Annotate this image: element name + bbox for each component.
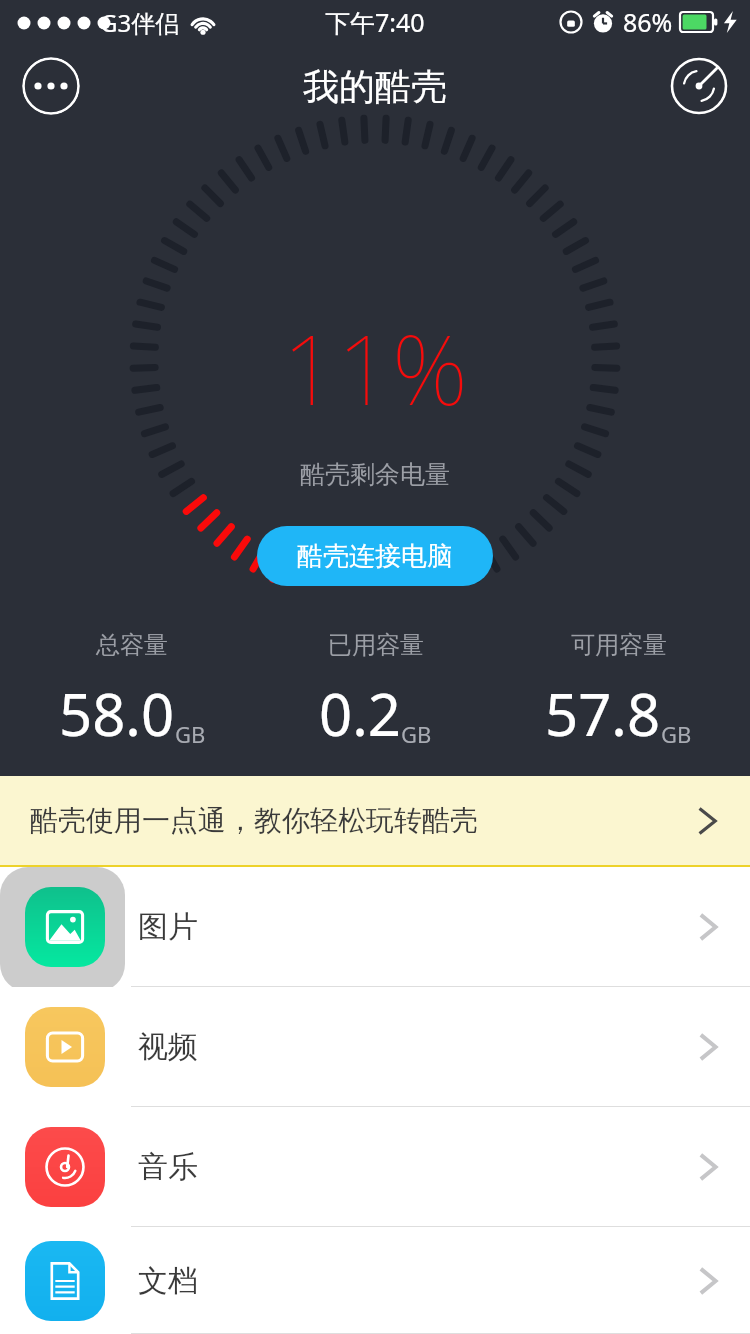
staticText: 0.2 (319, 674, 401, 753)
button[interactable]: 文档 (0, 1227, 750, 1334)
button[interactable]: More options (22, 57, 80, 115)
staticText: 酷壳剩余电量 (300, 459, 450, 490)
staticText: GB (401, 719, 432, 749)
staticText: 酷壳连接电脑 (297, 540, 453, 573)
button[interactable]: Speed test (670, 57, 728, 115)
button[interactable]: 音乐 (0, 1107, 750, 1227)
button[interactable]: 图片 (0, 867, 750, 987)
staticText: 已用容量 (328, 630, 424, 660)
staticText: 酷壳使用一点通，教你轻松玩转酷壳 (30, 803, 478, 838)
button[interactable]: 视频 (0, 987, 750, 1107)
staticText: 图片 (138, 908, 198, 946)
staticText: 我的酷壳 (303, 64, 447, 109)
staticText: 57.8 (545, 674, 661, 753)
button[interactable]: 酷壳使用一点通，教你轻松玩转酷壳 (0, 776, 750, 865)
staticText: 可用容量 (571, 630, 667, 660)
staticText: 文档 (138, 1262, 198, 1300)
staticText: 视频 (138, 1028, 198, 1066)
staticText: 总容量 (96, 630, 168, 660)
staticText: GB (175, 719, 206, 749)
staticText: 音乐 (138, 1148, 198, 1186)
staticText: 86% (623, 5, 673, 39)
staticText: 58.0 (59, 674, 175, 753)
staticText: 下午7:40 (325, 5, 425, 39)
button[interactable]: 酷壳连接电脑 (257, 526, 493, 586)
staticText: GB (661, 719, 692, 749)
staticText: 11% (282, 302, 468, 433)
staticText: G3伴侣 (100, 6, 180, 39)
